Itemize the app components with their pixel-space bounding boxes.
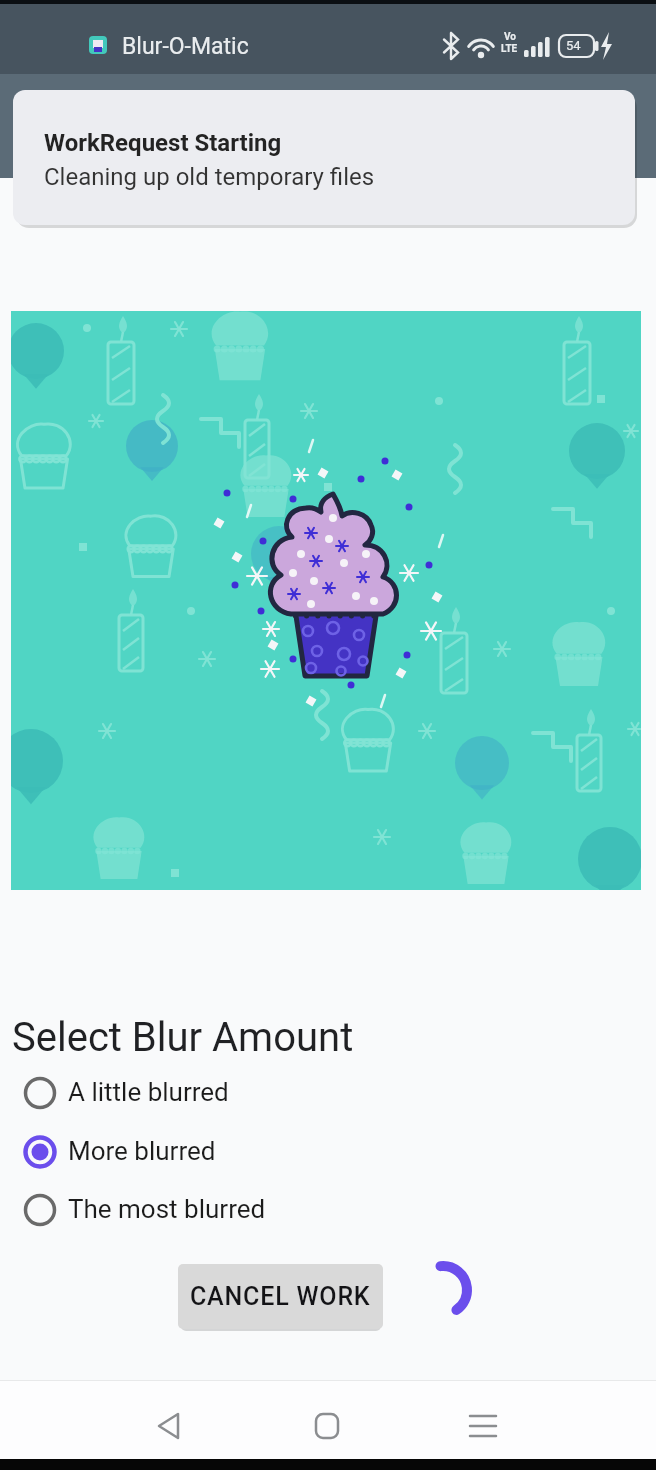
staticText: WorkRequest Starting bbox=[44, 129, 282, 157]
staticText: A little blurred bbox=[68, 1077, 229, 1107]
staticText: Blur-O-Matic bbox=[122, 33, 249, 60]
staticText: The most blurred bbox=[68, 1194, 266, 1224]
staticText: More blurred bbox=[68, 1136, 216, 1166]
staticText: LTE bbox=[501, 43, 518, 55]
staticText: CANCEL WORK bbox=[190, 1282, 371, 1311]
staticText: Select Blur Amount bbox=[12, 1014, 354, 1061]
staticText: Vo bbox=[504, 31, 516, 43]
staticText: 54 bbox=[566, 38, 581, 53]
staticText: Cleaning up old temporary files bbox=[44, 163, 375, 191]
